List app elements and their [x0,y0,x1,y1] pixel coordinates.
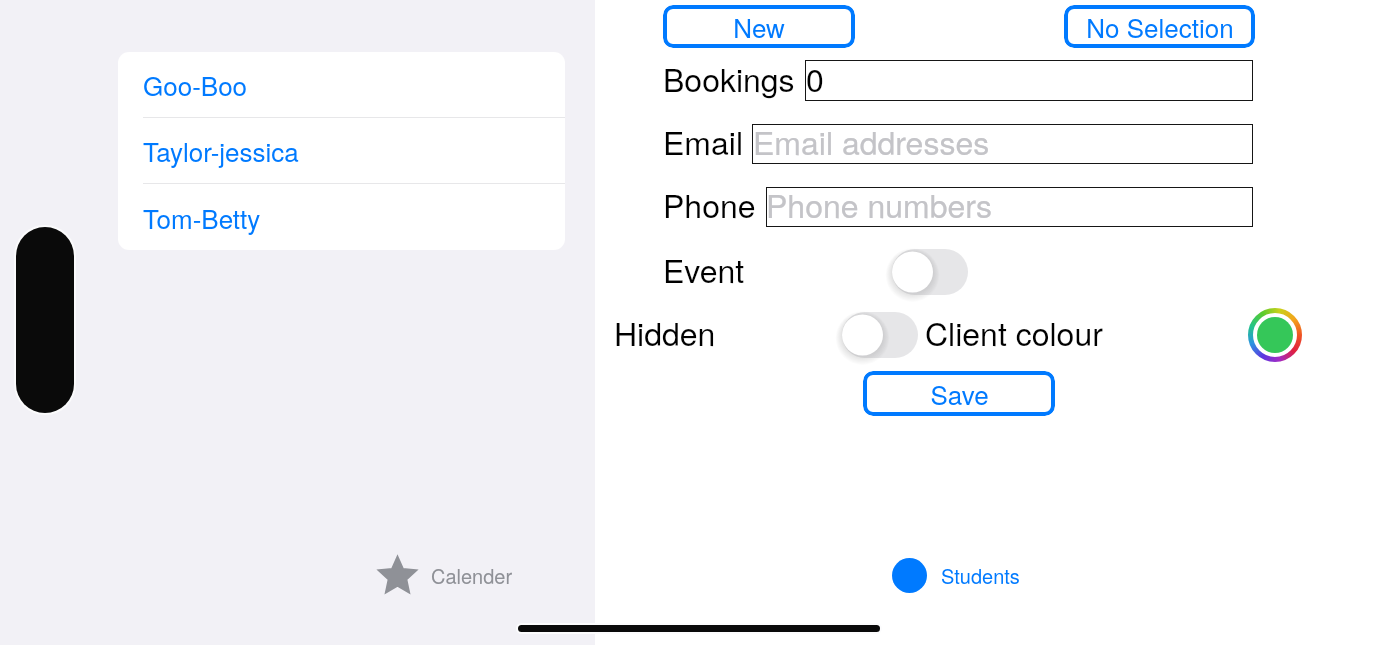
staticText: Event [663,246,745,292]
other: Calender [378,556,417,594]
staticText: Taylor-jessica [143,132,299,169]
staticText: Client colour [925,309,1103,355]
button[interactable]: Tom-Betty [118,184,565,250]
button[interactable]: Calender [378,548,513,596]
button[interactable]: Save [863,371,1055,416]
staticText: Hidden [614,309,716,355]
staticText: Save [930,375,989,412]
staticText: Goo-Boo [143,66,248,103]
staticText: Calender [431,561,513,590]
button[interactable]: Phone numbers [766,187,1253,227]
staticText: Tom-Betty [143,199,261,236]
button[interactable]: Students [892,557,1020,593]
staticText: 0 [806,55,824,96]
staticText: Students [941,561,1020,590]
staticText: Bookings [663,55,795,101]
staticText: Email [663,118,744,164]
button[interactable]: Toggle [886,243,974,301]
button[interactable]: New [663,5,855,48]
staticText: Phone numbers [766,181,993,221]
staticText: Phone [663,181,756,227]
button[interactable]: Bookings [805,60,1253,101]
button[interactable]: Goo-Boo [118,52,565,118]
button[interactable]: Email addresses [752,124,1253,164]
button[interactable]: Taylor-jessica [118,118,565,184]
staticText: New [733,8,785,45]
button[interactable]: Toggle [836,306,924,364]
staticText: No Selection [1086,8,1234,45]
button[interactable]: No Selection [1064,5,1255,48]
staticText: Email addresses [753,118,990,158]
button[interactable]: Client colour [1248,308,1302,362]
